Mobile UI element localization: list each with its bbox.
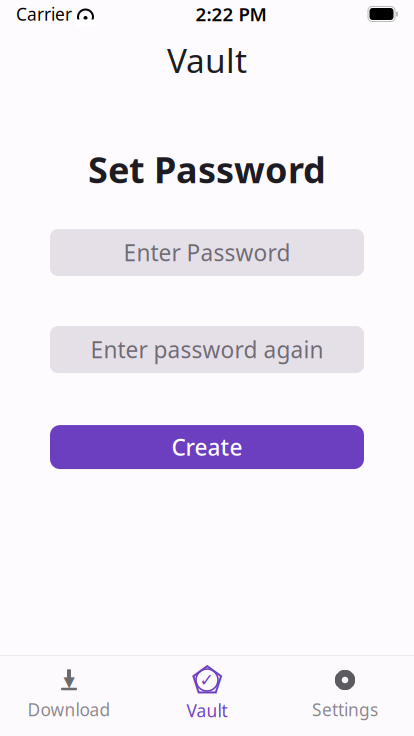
staticText: Carrier [16,2,72,25]
staticText: ✓ [199,670,214,690]
staticText: ⬠ [191,660,222,700]
staticText: Download [27,698,110,721]
staticText: Vault [186,699,227,722]
staticText: Settings [312,698,378,721]
button[interactable]: Enter password again [50,326,364,373]
button[interactable]: Create [50,425,364,469]
staticText: Set Password [88,145,326,193]
button[interactable]: Settings [276,669,414,721]
staticText: Enter password again [90,334,323,365]
button[interactable]: ⬠ [138,668,276,722]
staticText: 2:22 PM [195,2,266,26]
staticText: ▼ [63,673,74,690]
staticText: Create [171,432,242,462]
button[interactable]: Enter Password [50,229,364,276]
button[interactable]: ▼ [0,669,138,721]
staticText: Vault [167,38,247,82]
staticText: Enter Password [123,237,290,268]
